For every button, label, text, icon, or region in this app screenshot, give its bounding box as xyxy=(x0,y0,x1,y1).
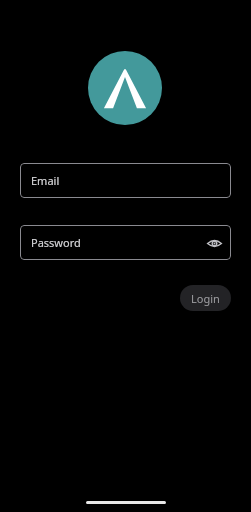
staticText: Password xyxy=(31,235,81,250)
button[interactable]: Show password xyxy=(205,234,223,252)
staticText: Email xyxy=(31,173,60,188)
staticText: Login xyxy=(191,291,220,306)
button[interactable]: Login xyxy=(180,285,231,311)
button[interactable]: Email xyxy=(20,163,231,198)
other: App logo xyxy=(88,51,162,125)
button[interactable]: Password xyxy=(20,225,231,260)
